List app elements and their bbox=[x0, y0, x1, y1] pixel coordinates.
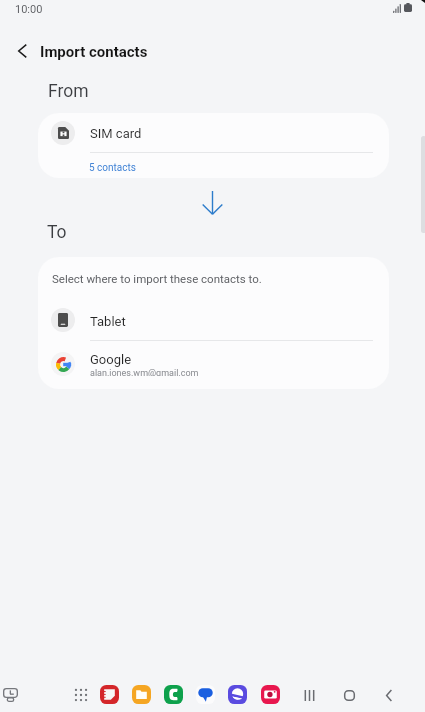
button[interactable]: Recent apps bbox=[297, 683, 321, 707]
staticText: Select where to import these contacts to… bbox=[52, 272, 262, 285]
staticText: 5 contacts bbox=[89, 162, 136, 174]
button[interactable]: My Files bbox=[128, 681, 154, 707]
staticText: To bbox=[47, 222, 67, 243]
button[interactable]: All apps bbox=[69, 683, 93, 707]
staticText: Tablet bbox=[90, 314, 126, 329]
button[interactable]: Recent screen bbox=[0, 683, 22, 707]
button[interactable]: Home bbox=[337, 683, 361, 707]
button[interactable]: Internet bbox=[224, 681, 250, 707]
button[interactable]: Back bbox=[377, 683, 401, 707]
staticText: 10:00 bbox=[15, 3, 43, 16]
button[interactable]: Tablet bbox=[38, 308, 389, 332]
button[interactable]: Navigate up bbox=[6, 31, 38, 71]
staticText: alan.jones.wm@gmail.com bbox=[90, 368, 199, 376]
button[interactable]: SIM card bbox=[38, 113, 389, 152]
button[interactable]: Phone bbox=[160, 681, 186, 707]
button[interactable]: Messages bbox=[192, 681, 218, 707]
button[interactable]: Samsung Notes bbox=[96, 681, 122, 707]
button[interactable]: Google bbox=[38, 352, 389, 376]
staticText: Import contacts bbox=[40, 43, 148, 61]
staticText: Google bbox=[90, 352, 132, 367]
staticText: From bbox=[48, 81, 89, 102]
staticText: SIM card bbox=[90, 126, 142, 141]
button[interactable]: Camera bbox=[257, 681, 283, 707]
